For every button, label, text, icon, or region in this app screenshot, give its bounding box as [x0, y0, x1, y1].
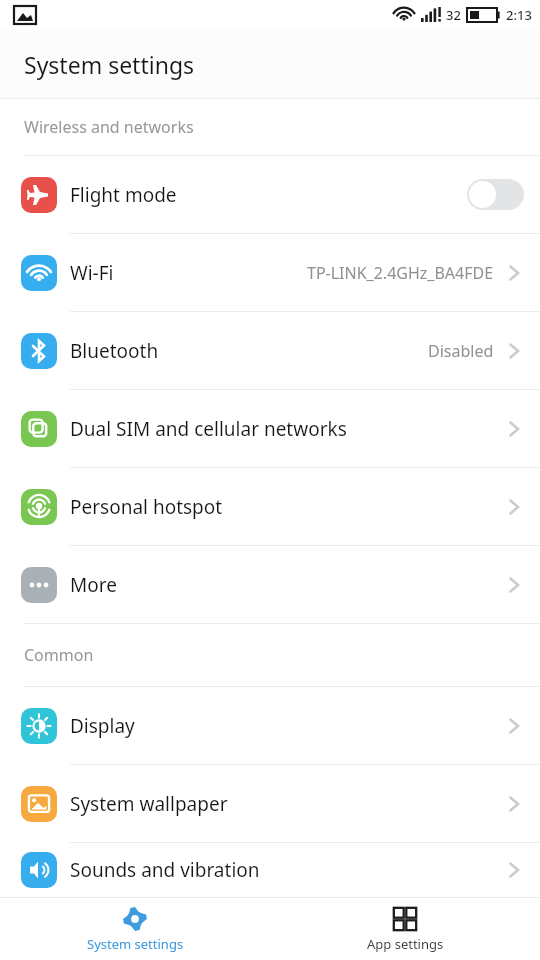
- staticText: Display: [70, 713, 135, 739]
- staticText: Wireless and networks: [24, 116, 194, 138]
- button[interactable]: Flight mode toggle: [467, 179, 524, 210]
- button[interactable]: Display: [0, 687, 540, 764]
- button[interactable]: System wallpaper: [0, 765, 540, 842]
- staticText: Flight mode: [70, 182, 177, 208]
- button[interactable]: Wi-Fi: [0, 234, 540, 311]
- staticText: System settings: [24, 49, 195, 80]
- staticText: Bluetooth: [70, 338, 159, 364]
- button[interactable]: Flight mode: [0, 156, 540, 233]
- staticText: TP-LINK_2.4GHz_BA4FDE: [307, 262, 494, 284]
- button[interactable]: App settings: [270, 898, 540, 960]
- staticText: System wallpaper: [70, 791, 228, 817]
- staticText: System settings: [87, 935, 184, 953]
- button[interactable]: Dual SIM and cellular networks: [0, 390, 540, 467]
- button[interactable]: Personal hotspot: [0, 468, 540, 545]
- button[interactable]: Sounds and vibration: [0, 843, 540, 897]
- button[interactable]: Bluetooth: [0, 312, 540, 389]
- button[interactable]: System settings: [0, 898, 270, 960]
- staticText: Personal hotspot: [70, 494, 223, 520]
- staticText: 32: [446, 6, 461, 24]
- staticText: App settings: [367, 935, 444, 953]
- staticText: Disabled: [428, 340, 494, 362]
- staticText: Dual SIM and cellular networks: [70, 416, 347, 442]
- staticText: 2:13: [506, 6, 532, 24]
- staticText: Sounds and vibration: [70, 857, 260, 883]
- staticText: Wi-Fi: [70, 260, 114, 286]
- button[interactable]: More: [0, 546, 540, 623]
- staticText: More: [70, 572, 117, 598]
- staticText: Common: [24, 644, 94, 666]
